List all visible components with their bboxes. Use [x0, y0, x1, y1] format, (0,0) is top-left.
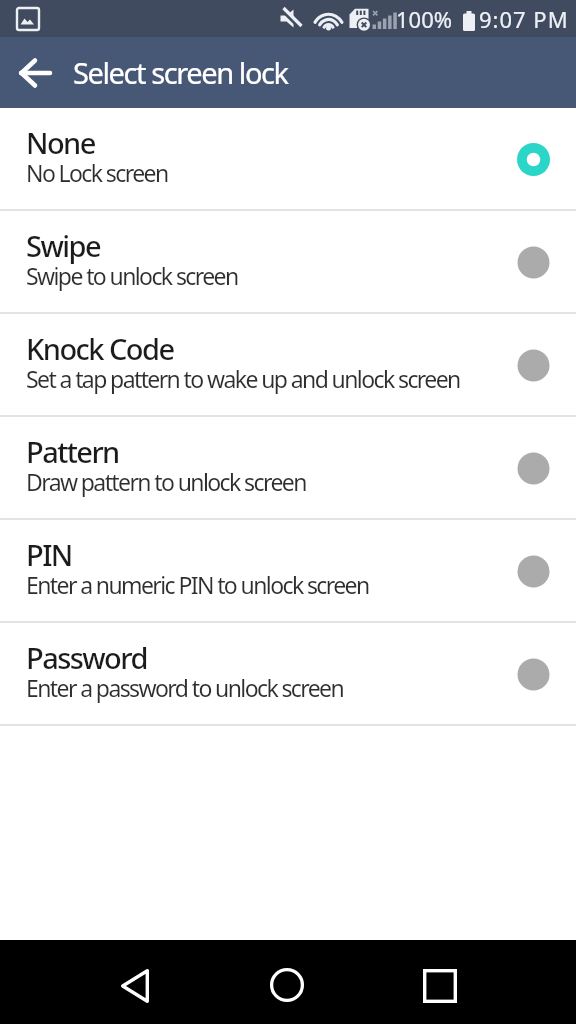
button[interactable]: PIN: [0, 520, 576, 623]
staticText: Swipe to unlock screen: [26, 260, 238, 291]
staticText: None: [26, 123, 95, 162]
button[interactable]: [237, 940, 337, 1024]
button[interactable]: None: [0, 108, 576, 211]
staticText: Pattern: [26, 432, 119, 471]
staticText: PIN: [26, 535, 72, 574]
button[interactable]: Pattern: [0, 417, 576, 520]
staticText: Enter a password to unlock screen: [26, 672, 344, 703]
button[interactable]: Password: [0, 623, 576, 726]
button[interactable]: [0, 40, 66, 106]
staticText: Draw pattern to unlock screen: [26, 466, 306, 497]
staticText: 100%: [396, 4, 453, 34]
button[interactable]: Swipe: [0, 211, 576, 314]
staticText: No Lock screen: [26, 157, 168, 188]
staticText: Enter a numeric PIN to unlock screen: [26, 569, 369, 600]
staticText: Swipe: [26, 226, 101, 265]
button[interactable]: [87, 940, 187, 1024]
staticText: Password: [26, 638, 147, 677]
staticText: Set a tap pattern to wake up and unlock …: [26, 363, 460, 394]
button[interactable]: [390, 940, 490, 1024]
staticText: Knock Code: [26, 329, 174, 368]
staticText: Select screen lock: [73, 53, 288, 92]
staticText: 9:07 PM: [479, 4, 569, 34]
button[interactable]: Knock Code: [0, 314, 576, 417]
